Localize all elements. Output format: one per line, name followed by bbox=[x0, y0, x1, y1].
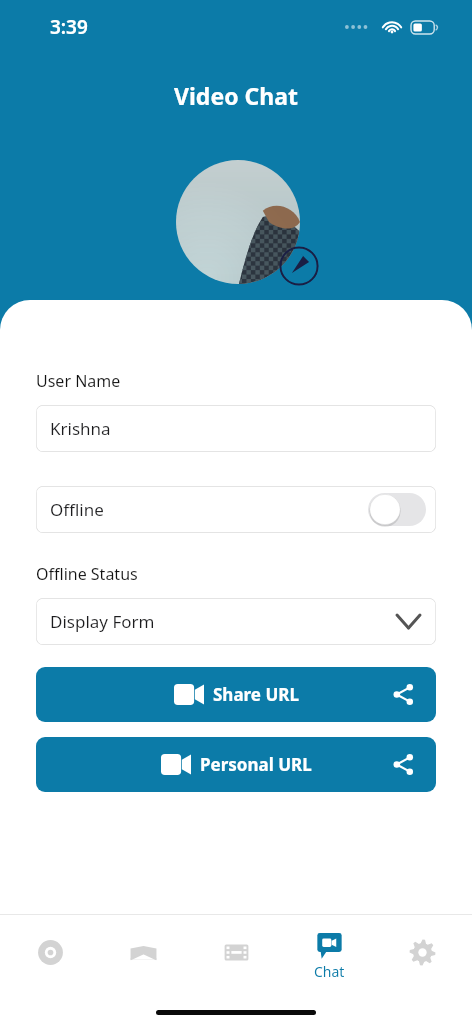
button[interactable]: Personal URL bbox=[36, 737, 436, 792]
staticText: Share URL bbox=[213, 683, 299, 706]
staticText: 3:39 bbox=[50, 14, 88, 40]
button[interactable]: Record bbox=[7, 914, 93, 986]
button[interactable]: Settings bbox=[379, 914, 465, 986]
button[interactable]: Edit photo bbox=[279, 246, 319, 286]
staticText: Offline Status bbox=[36, 563, 138, 585]
staticText: User Name bbox=[36, 370, 121, 392]
button[interactable]: Offline bbox=[36, 486, 436, 533]
button[interactable]: Mail bbox=[100, 914, 186, 986]
staticText: Display Form bbox=[50, 610, 155, 633]
staticText: Offline bbox=[50, 498, 104, 521]
button[interactable]: Videos bbox=[193, 914, 279, 986]
staticText: Personal URL bbox=[200, 753, 312, 776]
button[interactable]: Profile photo bbox=[176, 160, 300, 284]
staticText: Krishna bbox=[50, 417, 111, 440]
button[interactable]: Display Form bbox=[36, 598, 436, 645]
staticText: Video Chat bbox=[0, 80, 472, 111]
staticText: Chat bbox=[314, 962, 345, 981]
button[interactable]: Krishna bbox=[36, 405, 436, 452]
button[interactable]: Chat bbox=[286, 914, 372, 986]
button[interactable]: Share URL bbox=[36, 667, 436, 722]
